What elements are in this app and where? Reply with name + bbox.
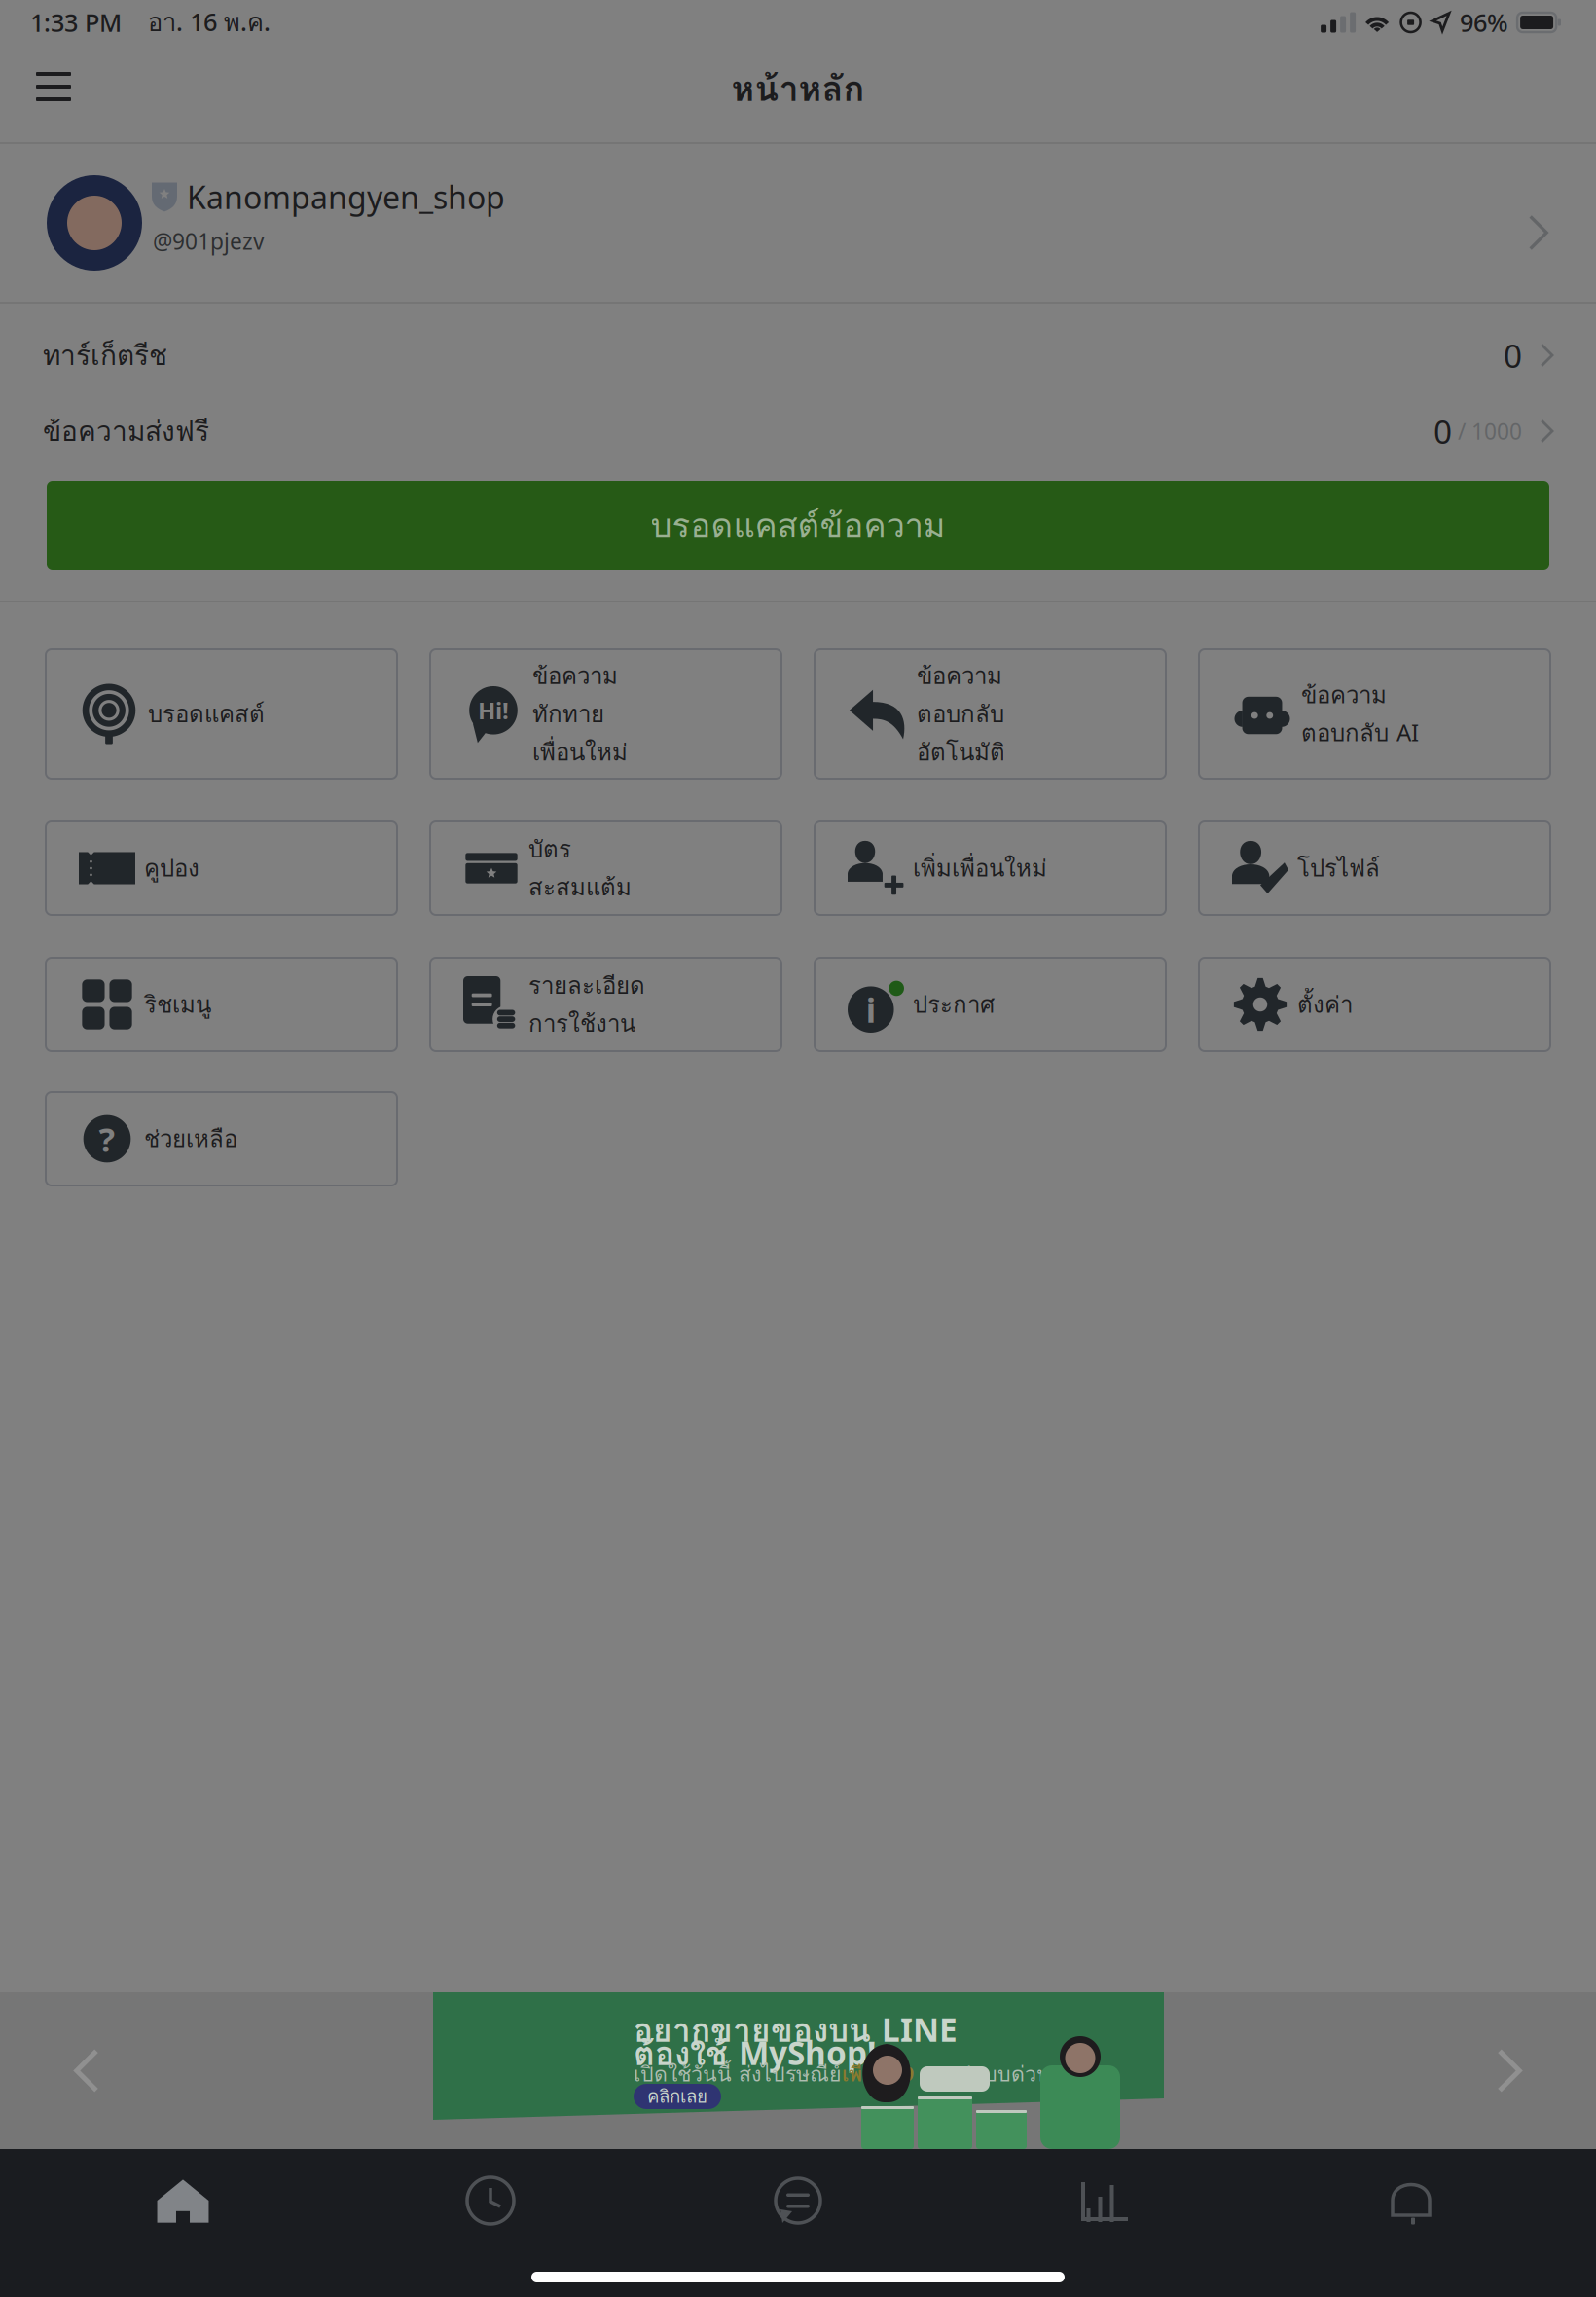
staticText: 1:33 PM [30, 6, 122, 39]
staticText: สะสมแต้ม [528, 869, 632, 905]
staticText: ตอบกลับ [917, 696, 1004, 732]
staticText: ? [99, 1116, 115, 1161]
button[interactable]: i [815, 958, 1166, 1051]
staticText: ตั้งค่า [1297, 986, 1353, 1023]
button[interactable]: เพิ่มเพื่อนใหม่ [815, 821, 1166, 915]
staticText: รายละเอียด [528, 967, 645, 1003]
button[interactable]: ? [46, 1092, 397, 1185]
staticText: ตอบกลับ AI [1301, 715, 1419, 751]
button[interactable]: ข้อความส่งฟรี [0, 393, 1596, 469]
staticText: ต้องใช้ MyShop! [634, 2029, 876, 2079]
button[interactable]: Insights [952, 2149, 1259, 2252]
button[interactable]: รายละเอียด [430, 958, 781, 1051]
staticText: ประกาศ [913, 986, 995, 1023]
button[interactable]: ทาร์เก็ตรีช [0, 317, 1596, 393]
staticText: / 1000 [1452, 416, 1522, 446]
button[interactable]: Previous banner [60, 2043, 115, 2098]
staticText: เปิดใช้วันนี้ ส่งไปรษณีย์ [634, 2058, 842, 2090]
staticText: เพิ่มเพื่อนใหม่ [913, 850, 1047, 886]
staticText: อัตโนมัติ [917, 734, 1005, 770]
button[interactable]: ข้อความ [1199, 649, 1550, 779]
staticText: ทาร์เก็ตรีช [43, 334, 167, 376]
staticText: ข้อความ [917, 658, 1002, 694]
button[interactable]: ข้อความ [815, 649, 1166, 779]
staticText: การใช้งาน [528, 1005, 635, 1042]
staticText: บัตร [528, 831, 571, 867]
staticText: 0 [1504, 334, 1522, 377]
staticText: คลิกเลย [647, 2082, 707, 2111]
button[interactable]: โปรไฟล์ [1199, 821, 1550, 915]
button[interactable]: Notifications [1259, 2149, 1567, 2252]
button[interactable]: ริชเมนู [46, 958, 397, 1051]
staticText: เพื่อนใหม่ [532, 734, 628, 770]
button[interactable]: บรอดแคสต์ข้อความ [47, 481, 1549, 570]
staticText: @901pjezv [153, 226, 265, 256]
button[interactable]: Kanompangyen_shop [0, 144, 1596, 302]
button[interactable]: Next banner [1481, 2043, 1536, 2098]
staticText: โปรไฟล์ [1297, 850, 1380, 886]
staticText: คูปอง [144, 850, 199, 886]
staticText: ทักทาย [532, 696, 604, 732]
button[interactable]: อยากขายของบน LINE [433, 1992, 1164, 2149]
button[interactable]: Home [29, 2149, 337, 2252]
staticText: Hi! [478, 695, 509, 726]
button[interactable]: บัตร [430, 821, 781, 915]
button[interactable]: Hi! [430, 649, 781, 779]
staticText: บรอดแคสต์ [148, 696, 265, 732]
staticText: ช่วยเหลือ [144, 1121, 237, 1157]
staticText: ข้อความส่งฟรี [43, 410, 209, 452]
staticText: อยากขายของบน LINE [634, 2005, 958, 2056]
button[interactable]: บรอดแคสต์ [46, 649, 397, 779]
button[interactable]: คูปอง [46, 821, 397, 915]
staticText: (แบบด่วน) [959, 2058, 1057, 2090]
staticText: Kanompangyen_shop [187, 176, 505, 218]
staticText: เพียง 19 บาท [842, 2058, 959, 2090]
button[interactable]: Chats [644, 2149, 952, 2252]
staticText: 0 [1433, 410, 1452, 453]
button[interactable]: History [337, 2149, 644, 2252]
staticText: ข้อความ [532, 658, 618, 694]
staticText: ริชเมนู [144, 986, 211, 1023]
button[interactable]: ตั้งค่า [1199, 958, 1550, 1051]
staticText: หน้าหลัก [731, 61, 865, 116]
staticText: อา. 16 พ.ค. [122, 3, 271, 42]
staticText: บรอดแคสต์ข้อความ [651, 499, 945, 552]
staticText: 96% [1460, 6, 1509, 39]
button[interactable]: Menu [18, 45, 90, 142]
staticText: ข้อความ [1301, 677, 1387, 713]
staticText: i [866, 987, 876, 1032]
